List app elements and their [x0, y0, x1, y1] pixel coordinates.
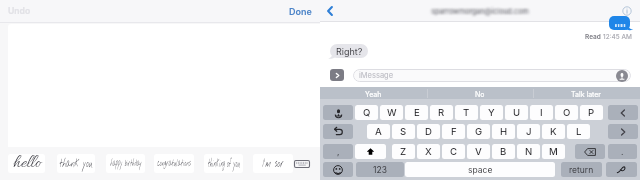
- staticText: R: [438, 107, 445, 119]
- staticText: J: [526, 126, 532, 138]
- button[interactable]: Dictation: [323, 105, 353, 120]
- button[interactable]: I'm sor: [253, 154, 293, 173]
- button[interactable]: thank you: [57, 154, 95, 173]
- staticText: F: [451, 126, 457, 138]
- staticText: thank you: [57, 156, 95, 172]
- staticText: ,: [337, 147, 340, 157]
- button[interactable]: V: [467, 144, 490, 159]
- button[interactable]: happy birthday: [106, 154, 145, 173]
- button[interactable]: Emoji: [323, 162, 353, 177]
- button[interactable]: Z: [392, 144, 415, 159]
- staticText: O: [563, 107, 571, 119]
- button[interactable]: Delete: [575, 144, 605, 159]
- button[interactable]: congratulations: [154, 154, 194, 173]
- button[interactable]: K: [542, 124, 565, 139]
- button[interactable]: thinking of you: [204, 154, 243, 173]
- button[interactable]: W: [380, 105, 403, 120]
- staticText: 12:45 AM: [603, 33, 632, 41]
- staticText: Right?: [336, 46, 363, 57]
- button[interactable]: Talk later: [533, 87, 640, 100]
- staticText: happy birthday: [106, 156, 145, 171]
- staticText: S: [400, 126, 407, 138]
- staticText: sparrowmorgan@icloud.com: [418, 6, 542, 16]
- button[interactable]: return: [561, 162, 602, 177]
- button[interactable]: Yeah: [320, 87, 426, 100]
- button[interactable]: E: [405, 105, 428, 120]
- staticText: Y: [488, 107, 495, 119]
- staticText: 123: [373, 165, 387, 175]
- button[interactable]: O: [555, 105, 578, 120]
- button[interactable]: Previous: [608, 105, 638, 120]
- staticText: K: [550, 126, 557, 138]
- button[interactable]: ,: [323, 144, 353, 159]
- staticText: .: [621, 147, 624, 157]
- staticText: H: [500, 126, 508, 138]
- button[interactable]: 123: [356, 162, 404, 177]
- staticText: iMessage: [359, 71, 394, 80]
- button[interactable]: .: [608, 144, 637, 159]
- button[interactable]: H: [492, 124, 515, 139]
- staticText: V: [475, 146, 482, 158]
- button[interactable]: Done: [284, 0, 312, 22]
- button[interactable]: Undo: [323, 124, 353, 139]
- button[interactable]: Y: [480, 105, 503, 120]
- staticText: C: [450, 146, 458, 158]
- staticText: hello: [8, 154, 45, 172]
- staticText: E: [414, 107, 420, 119]
- button[interactable]: F: [442, 124, 465, 139]
- button[interactable]: Details: [618, 0, 636, 21]
- staticText: Read: [585, 33, 603, 41]
- button[interactable]: Dictate: [616, 70, 628, 82]
- staticText: M: [549, 146, 558, 158]
- staticText: N: [525, 146, 533, 158]
- staticText: A: [375, 126, 382, 138]
- button[interactable]: No: [426, 87, 533, 100]
- button[interactable]: D: [417, 124, 440, 139]
- button[interactable]: Handwriting: [606, 162, 637, 177]
- button[interactable]: hello: [8, 154, 45, 173]
- button[interactable]: G: [467, 124, 490, 139]
- button[interactable]: T: [455, 105, 478, 120]
- button[interactable]: C: [442, 144, 465, 159]
- button[interactable]: iMessage: [353, 69, 631, 82]
- staticText: Undo: [8, 6, 30, 16]
- button[interactable]: Keyboard: [290, 155, 314, 172]
- button[interactable]: Shift: [355, 144, 386, 159]
- staticText: U: [513, 107, 521, 119]
- staticText: Yeah: [365, 90, 382, 98]
- staticText: W: [387, 107, 397, 119]
- button[interactable]: R: [430, 105, 453, 120]
- staticText: Q: [363, 107, 371, 119]
- staticText: thinking of you: [204, 156, 243, 171]
- staticText: L: [576, 126, 582, 138]
- button[interactable]: Next: [608, 124, 638, 139]
- button[interactable]: X: [417, 144, 440, 159]
- staticText: D: [425, 126, 432, 138]
- button[interactable]: P: [580, 105, 603, 120]
- staticText: I: [540, 107, 543, 119]
- button[interactable]: M: [542, 144, 565, 159]
- staticText: Talk later: [571, 90, 602, 98]
- button[interactable]: I: [530, 105, 553, 120]
- button[interactable]: J: [517, 124, 540, 139]
- staticText: B: [500, 146, 507, 158]
- button[interactable]: A: [367, 124, 390, 139]
- button[interactable]: Undo: [8, 0, 30, 22]
- button[interactable]: N: [517, 144, 540, 159]
- button[interactable]: Apps: [330, 69, 344, 81]
- button[interactable]: B: [492, 144, 515, 159]
- staticText: congratulations: [154, 156, 194, 171]
- staticText: I'm sor: [253, 155, 293, 172]
- button[interactable]: L: [567, 124, 590, 139]
- button[interactable]: Q: [355, 105, 378, 120]
- staticText: return: [569, 165, 594, 175]
- button[interactable]: Back: [322, 0, 338, 21]
- button[interactable]: S: [392, 124, 415, 139]
- button[interactable]: space: [405, 162, 555, 177]
- button[interactable]: U: [505, 105, 528, 120]
- staticText: Z: [400, 146, 407, 158]
- staticText: P: [588, 107, 595, 119]
- staticText: X: [425, 146, 432, 158]
- button[interactable]: Right?: [330, 44, 368, 58]
